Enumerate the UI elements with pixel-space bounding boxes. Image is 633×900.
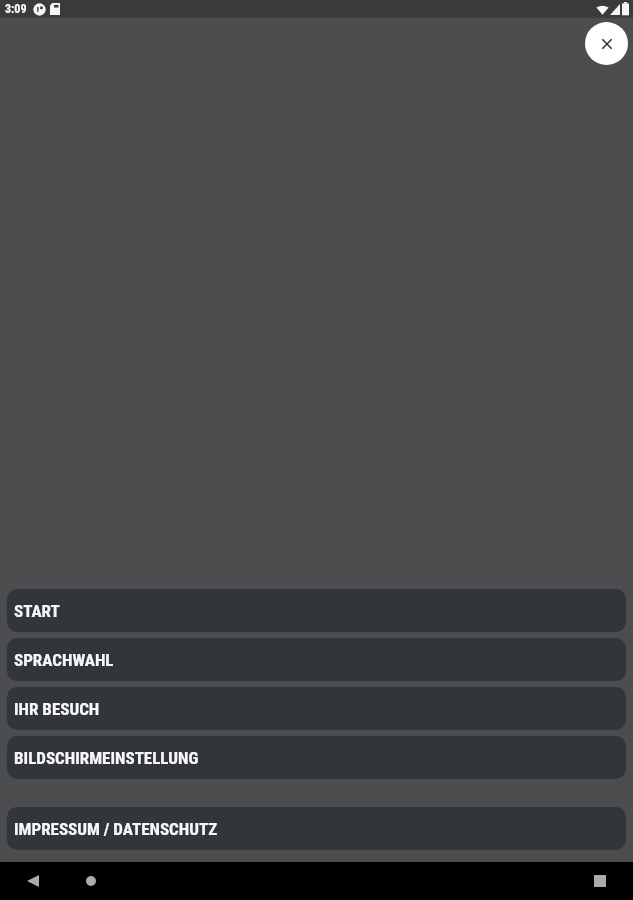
button[interactable]: Home: [76, 866, 106, 896]
staticText: 3:09: [5, 2, 27, 16]
button[interactable]: Back: [18, 866, 48, 896]
button[interactable]: Close: [585, 22, 628, 65]
staticText: IMPRESSUM / DATENSCHUTZ: [14, 819, 218, 839]
button[interactable]: IMPRESSUM / DATENSCHUTZ: [7, 807, 626, 850]
button[interactable]: IHR BESUCH: [7, 687, 626, 730]
button[interactable]: BILDSCHIRMEINSTELLUNG: [7, 736, 626, 779]
staticText: START: [14, 601, 60, 621]
button[interactable]: SPRACHWAHL: [7, 638, 626, 681]
staticText: IHR BESUCH: [14, 699, 100, 719]
staticText: BILDSCHIRMEINSTELLUNG: [14, 748, 199, 768]
button[interactable]: Recent apps: [585, 866, 615, 896]
staticText: SPRACHWAHL: [14, 650, 114, 670]
button[interactable]: START: [7, 589, 626, 632]
